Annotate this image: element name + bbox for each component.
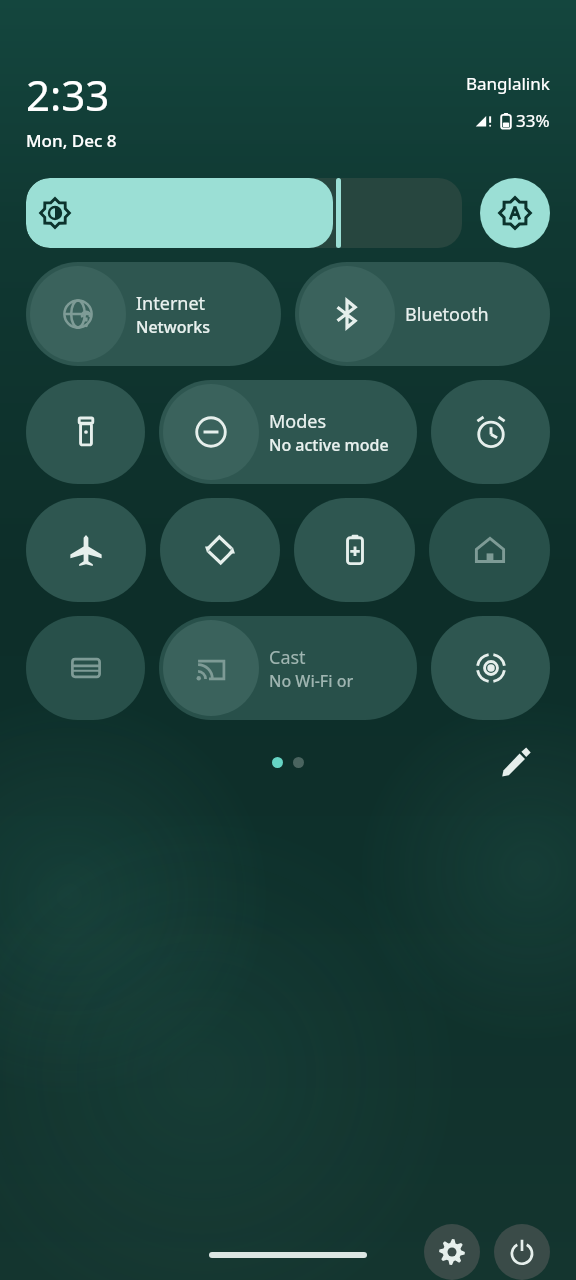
button[interactable]: Alarm — [431, 380, 550, 484]
staticText: No Wi-Fi or Ethernet — [269, 670, 413, 692]
button[interactable]: Screen record — [431, 616, 550, 720]
staticText: Cast — [269, 645, 306, 670]
button[interactable]: Flashlight — [26, 380, 145, 484]
button[interactable]: Settings — [424, 1224, 480, 1280]
button[interactable]: Battery saver — [294, 498, 415, 602]
button[interactable]: Auto rotate — [160, 498, 280, 602]
staticText: Mon, Dec 8 — [26, 129, 117, 152]
button[interactable]: Airplane mode — [26, 498, 146, 602]
button[interactable]: Cast — [159, 616, 417, 720]
button[interactable]: Power — [494, 1224, 550, 1280]
staticText: Internet — [136, 291, 206, 316]
staticText: Bluetooth — [405, 302, 489, 327]
button[interactable]: Internet — [26, 262, 281, 366]
staticText: 33% — [516, 109, 550, 132]
button[interactable]: Auto brightness — [480, 178, 550, 248]
staticText: Modes — [269, 409, 327, 434]
staticText: Networks available — [136, 316, 277, 338]
button[interactable]: Modes — [159, 380, 417, 484]
staticText: No active mode — [269, 434, 389, 456]
staticText: Banglalink — [466, 72, 550, 95]
button[interactable]: Home — [429, 498, 550, 602]
button[interactable] — [26, 178, 462, 248]
staticText: 2:33 — [26, 66, 110, 123]
button[interactable]: Bluetooth — [295, 262, 550, 366]
button[interactable]: Edit tiles — [496, 742, 536, 782]
button[interactable]: Wallet — [26, 616, 145, 720]
